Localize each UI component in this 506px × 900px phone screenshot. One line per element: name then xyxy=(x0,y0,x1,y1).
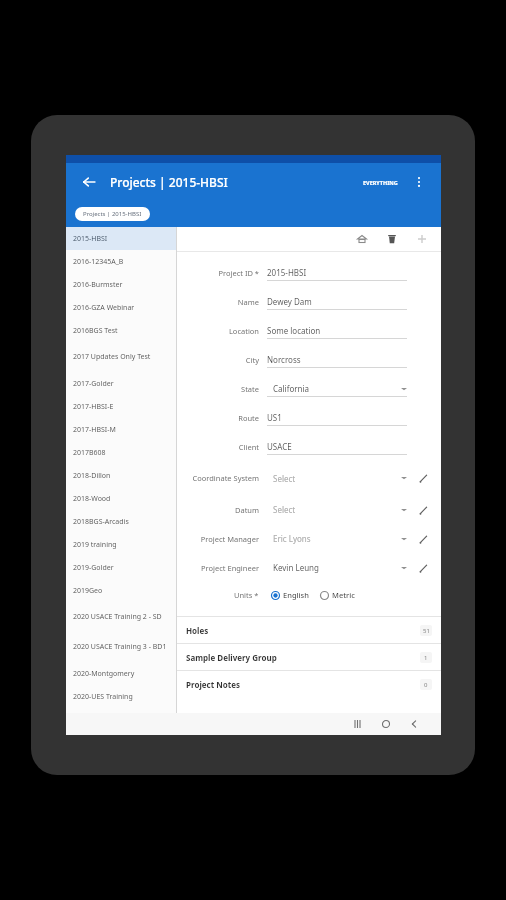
button[interactable]: City xyxy=(177,345,441,374)
staticText: 2018BGS-Arcadis xyxy=(73,517,129,527)
staticText: Location xyxy=(228,326,259,336)
button[interactable]: Client xyxy=(177,432,441,461)
button[interactable]: 2020-UES Training xyxy=(66,685,176,708)
staticText: Projects | 2015-HBSI xyxy=(110,174,228,190)
button[interactable]: Project Manager xyxy=(177,524,441,553)
staticText: Datum xyxy=(234,505,259,515)
staticText: Coordinate System xyxy=(192,473,259,483)
staticText: Client xyxy=(238,442,259,452)
button[interactable]: 2017-HBSI-M xyxy=(66,418,176,441)
staticText: 2016-Burmster xyxy=(73,280,123,290)
button[interactable]: 2017B608 xyxy=(66,441,176,464)
button[interactable]: 2016-GZA Webinar xyxy=(66,296,176,319)
button[interactable]: 2017 Updates Only Test xyxy=(66,342,176,372)
staticText: 0 xyxy=(424,681,428,689)
button[interactable]: 2020 USACE Training 3 - BD1 xyxy=(66,632,176,662)
button[interactable]: Project ID * xyxy=(177,258,441,287)
staticText: Metric xyxy=(332,590,355,600)
staticText: 1 xyxy=(424,654,428,662)
button[interactable]: EVERYTHING xyxy=(360,175,401,190)
button[interactable]: 2020-Montgomery xyxy=(66,662,176,685)
button[interactable]: 2017-Golder xyxy=(66,372,176,395)
button[interactable]: Projects | 2015-HBSI xyxy=(75,207,150,221)
staticText: Norcross xyxy=(267,354,301,365)
button[interactable]: Sample Delivery Group xyxy=(177,644,441,670)
button[interactable]: More options xyxy=(407,170,431,194)
staticText: 2019-Golder xyxy=(73,563,114,573)
button[interactable]: 2017-HBSI-E xyxy=(66,395,176,418)
staticText: Project ID * xyxy=(218,268,259,278)
button[interactable]: 2019Geo xyxy=(66,579,176,602)
staticText: Projects | 2015-HBSI xyxy=(83,210,142,218)
staticText: Eric Lyons xyxy=(273,533,311,544)
button[interactable]: Edit Datum xyxy=(415,502,431,518)
staticText: 2017-HBSI-M xyxy=(73,425,116,435)
staticText: US1 xyxy=(267,412,282,423)
button[interactable]: Recent apps xyxy=(349,715,367,733)
staticText: 2020 USACE Training 2 - SD xyxy=(73,612,162,622)
button[interactable]: Project Notes xyxy=(177,671,441,697)
staticText: 2017B608 xyxy=(73,448,106,458)
button[interactable]: Edit Coordinate System xyxy=(415,470,431,486)
button[interactable]: Delete xyxy=(383,230,401,248)
staticText: Holes xyxy=(186,625,209,636)
staticText: California xyxy=(273,383,310,394)
staticText: 2020-UES Training xyxy=(73,692,133,702)
staticText: Route xyxy=(238,413,259,423)
staticText: 2016BGS Test xyxy=(73,326,118,336)
button[interactable]: 2018-Dillon xyxy=(66,464,176,487)
staticText: 2017-Golder xyxy=(73,379,114,389)
staticText: Select xyxy=(273,504,296,515)
button[interactable]: Route xyxy=(177,403,441,432)
button[interactable]: 2015-HBSI xyxy=(66,227,176,250)
staticText: Name xyxy=(237,297,259,307)
staticText: Dewey Dam xyxy=(267,296,312,307)
staticText: 2017-HBSI-E xyxy=(73,402,114,412)
staticText: State xyxy=(241,384,259,394)
button[interactable]: Metric xyxy=(318,588,357,602)
button[interactable]: 2016BGS Test xyxy=(66,319,176,342)
button[interactable]: Home xyxy=(377,715,395,733)
button[interactable]: 2016-Burmster xyxy=(66,273,176,296)
staticText: 2016-GZA Webinar xyxy=(73,303,135,313)
button[interactable]: Datum xyxy=(177,495,441,524)
button[interactable]: Edit Project Manager xyxy=(415,531,431,547)
button[interactable]: Coordinate System xyxy=(177,461,441,495)
button[interactable]: Location xyxy=(177,316,441,345)
staticText: Project Engineer xyxy=(201,563,259,573)
staticText: English xyxy=(283,590,309,600)
staticText: City xyxy=(245,355,259,365)
staticText: 2015-HBSI xyxy=(267,267,307,278)
staticText: Kevin Leung xyxy=(273,562,319,573)
staticText: Sample Delivery Group xyxy=(186,652,277,663)
button[interactable]: Home xyxy=(353,230,371,248)
staticText: 2019 training xyxy=(73,540,117,550)
staticText: 2018-Dillon xyxy=(73,471,111,481)
staticText: 51 xyxy=(423,627,430,635)
button[interactable]: Add xyxy=(413,230,431,248)
staticText: Project Notes xyxy=(186,679,240,690)
staticText: EVERYTHING xyxy=(363,179,398,186)
button[interactable]: 2018BGS-Arcadis xyxy=(66,510,176,533)
staticText: Units * xyxy=(234,590,259,600)
button[interactable]: 2016-12345A_B xyxy=(66,250,176,273)
staticText: 2018-Wood xyxy=(73,494,111,504)
button[interactable]: Edit Project Engineer xyxy=(415,560,431,576)
button[interactable]: 2020 USACE Training 2 - SD xyxy=(66,602,176,632)
staticText: Select xyxy=(273,473,296,484)
button[interactable]: Back xyxy=(405,715,423,733)
button[interactable]: 2019 training xyxy=(66,533,176,556)
staticText: Some location xyxy=(267,325,321,336)
button[interactable]: 2019-Golder xyxy=(66,556,176,579)
button[interactable]: Back xyxy=(76,169,102,195)
button[interactable]: 2018-Wood xyxy=(66,487,176,510)
staticText: 2015-HBSI xyxy=(73,234,108,244)
button[interactable]: English xyxy=(269,588,311,602)
staticText: USACE xyxy=(267,441,292,452)
button[interactable]: Project Engineer xyxy=(177,553,441,582)
button[interactable]: Holes xyxy=(177,617,441,643)
staticText: 2017 Updates Only Test xyxy=(73,352,151,362)
staticText: Project Manager xyxy=(200,534,259,544)
button[interactable]: Name xyxy=(177,287,441,316)
button[interactable]: State xyxy=(177,374,441,403)
